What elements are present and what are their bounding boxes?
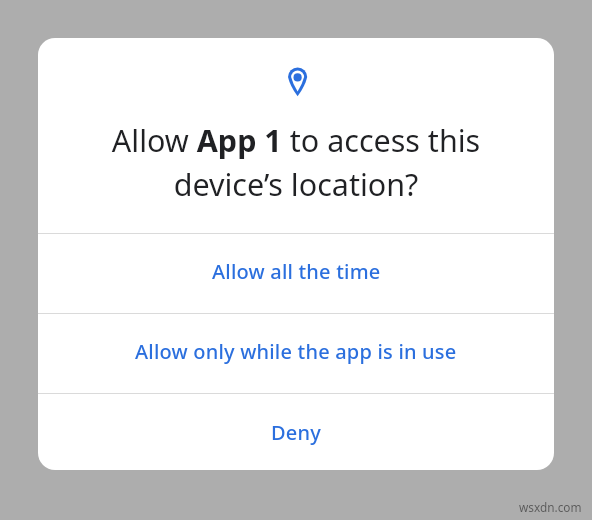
staticText: Allow all the time	[212, 258, 381, 285]
staticText: wsxdn.com	[519, 499, 582, 515]
button[interactable]: Deny	[38, 394, 554, 470]
button[interactable]: Allow all the time	[38, 234, 554, 313]
staticText: Deny	[271, 419, 321, 446]
button[interactable]: Allow only while the app is in use	[38, 314, 554, 393]
staticText: Allow only while the app is in use	[135, 338, 457, 365]
staticText: Allow App 1 to access this device’s loca…	[38, 119, 554, 205]
